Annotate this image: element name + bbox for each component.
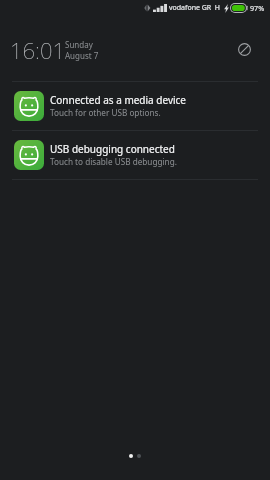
- staticText: vodafone GR H: [169, 3, 221, 13]
- staticText: August 7: [65, 50, 99, 61]
- staticText: 97%: [250, 3, 265, 13]
- button[interactable]: USB debugging connected: [0, 131, 270, 179]
- button[interactable]: Do not disturb: [231, 36, 257, 62]
- staticText: USB debugging connected: [50, 142, 175, 156]
- staticText: Touch for other USB options.: [50, 107, 161, 118]
- button[interactable]: Connected as a media device: [0, 82, 270, 130]
- staticText: Sunday: [65, 39, 93, 50]
- staticText: Connected as a media device: [50, 93, 186, 107]
- staticText: 16:01: [10, 35, 66, 65]
- staticText: Touch to disable USB debugging.: [50, 156, 177, 167]
